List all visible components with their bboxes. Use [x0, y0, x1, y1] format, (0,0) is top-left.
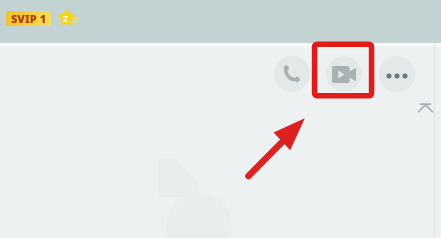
staticText: Z: [63, 12, 69, 24]
button[interactable]: Collapse: [415, 96, 437, 116]
button[interactable]: Video call: [326, 56, 362, 92]
button[interactable]: Voice call: [274, 56, 310, 92]
staticText: SVIP 1: [11, 11, 47, 26]
button[interactable]: SVIP 1: [6, 11, 51, 26]
button[interactable]: Star level: [59, 10, 80, 26]
button[interactable]: More options: [379, 56, 415, 92]
